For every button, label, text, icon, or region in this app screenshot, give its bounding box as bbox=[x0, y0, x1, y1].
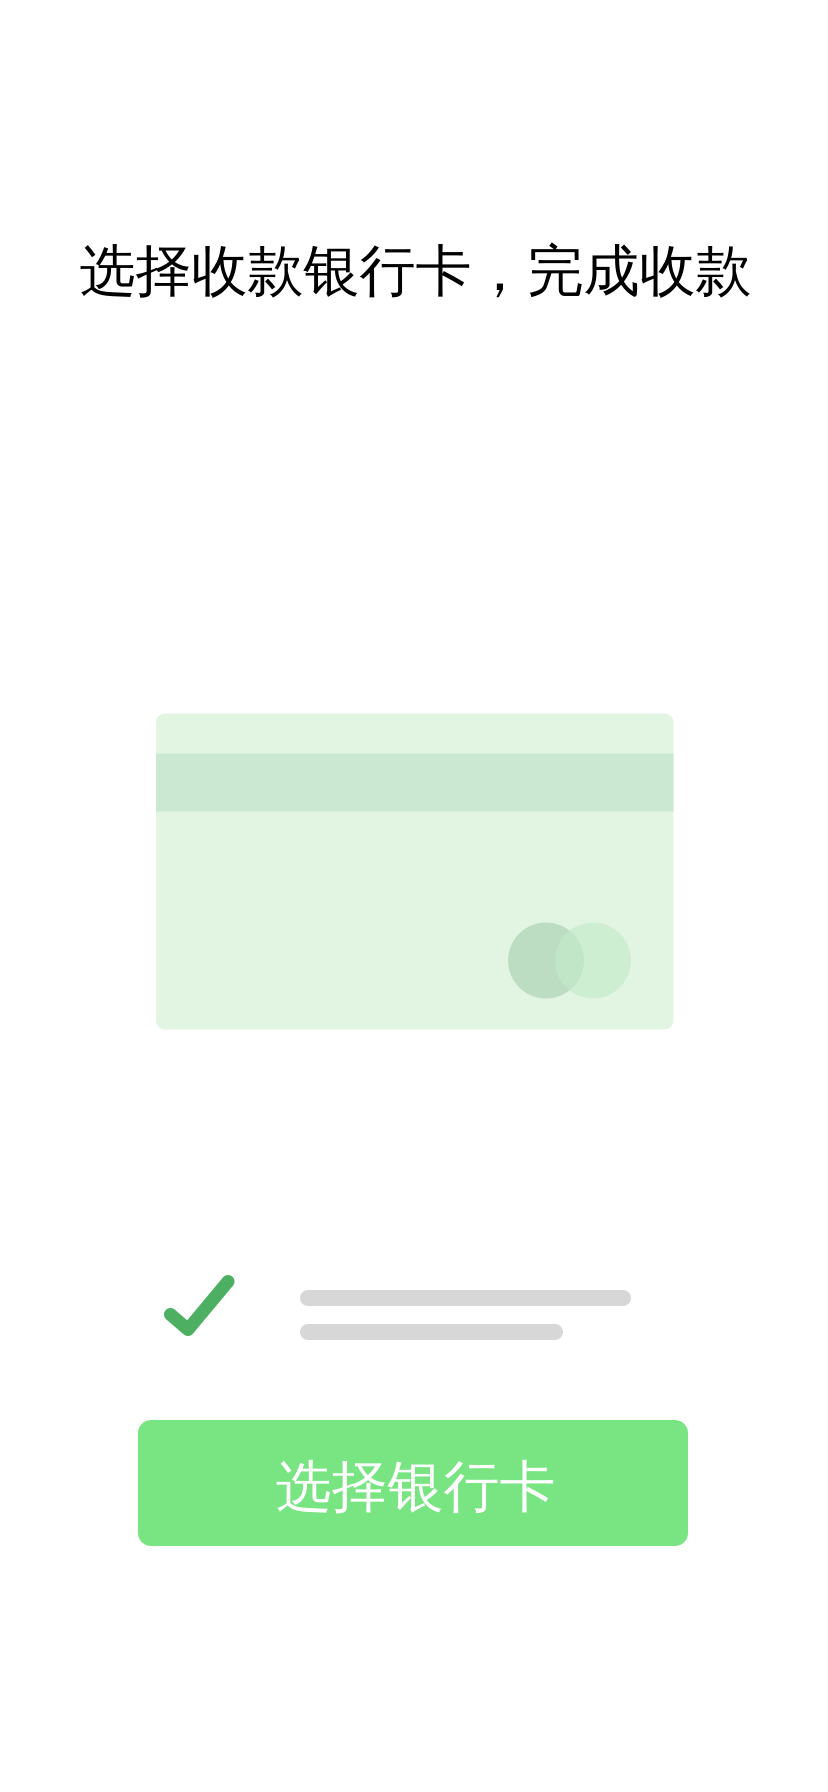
staticText: 选择银行卡 bbox=[275, 1453, 555, 1521]
button[interactable]: 选择银行卡 bbox=[138, 1420, 688, 1546]
staticText: 选择收款银行卡，完成收款 bbox=[79, 237, 751, 306]
